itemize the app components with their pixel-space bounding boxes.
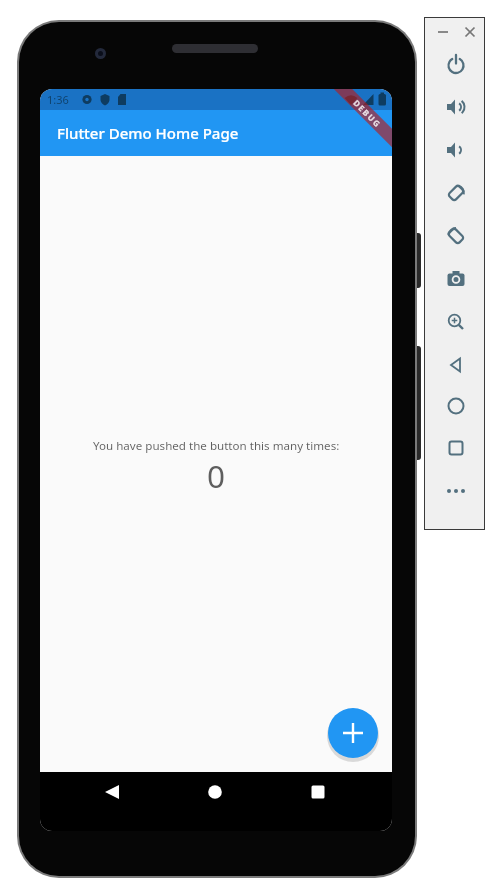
button[interactable] <box>328 708 378 758</box>
button[interactable] <box>442 265 470 293</box>
button[interactable] <box>442 136 470 164</box>
button[interactable] <box>442 179 470 207</box>
button[interactable] <box>442 308 470 336</box>
staticText: You have pushed the button this many tim… <box>93 438 340 454</box>
button[interactable] <box>442 93 470 121</box>
staticText: 0 <box>207 454 226 497</box>
button[interactable] <box>442 477 470 505</box>
staticText: 1:36 <box>47 92 69 107</box>
button[interactable] <box>201 778 229 806</box>
button[interactable] <box>442 434 470 462</box>
staticText: DEBUG <box>351 97 384 130</box>
button[interactable] <box>442 222 470 250</box>
button[interactable] <box>442 392 470 420</box>
button[interactable] <box>442 50 470 78</box>
staticText: Flutter Demo Home Page <box>57 123 239 143</box>
button[interactable] <box>462 24 478 40</box>
button[interactable] <box>304 778 332 806</box>
button[interactable] <box>435 24 451 40</box>
button[interactable]: Flutter Demo Home Page <box>40 110 392 156</box>
button[interactable] <box>98 778 126 806</box>
button[interactable] <box>442 351 470 379</box>
